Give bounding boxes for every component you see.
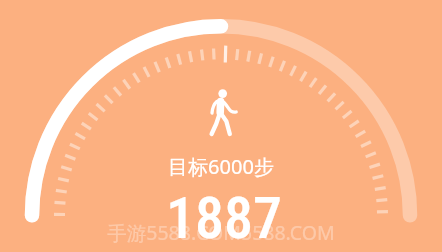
staticText: 手游5588.COM5588.COM [107,219,335,246]
staticText: 目标6000步 [168,153,274,180]
other: Walking steps [0,0,442,252]
staticText: 1887 [166,184,282,252]
